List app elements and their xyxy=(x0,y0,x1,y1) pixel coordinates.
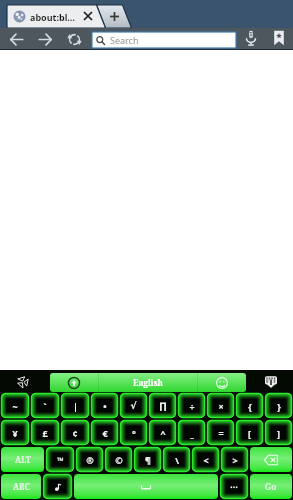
button[interactable]: Voice search xyxy=(241,28,261,48)
staticText: ALT xyxy=(15,454,31,465)
button[interactable]: > xyxy=(220,446,249,473)
button[interactable]: { xyxy=(235,392,264,419)
button[interactable]: English xyxy=(99,373,197,392)
staticText: £ xyxy=(42,427,48,439)
staticText: < xyxy=(203,454,209,466)
button[interactable]: Back xyxy=(6,29,26,49)
button[interactable] xyxy=(74,474,218,499)
staticText: ¥ xyxy=(12,427,18,439)
button[interactable]: ∏ xyxy=(148,392,177,419)
button[interactable]: € xyxy=(90,419,119,446)
button[interactable]: × xyxy=(206,392,235,419)
button[interactable] xyxy=(250,447,292,472)
button[interactable]: Go xyxy=(250,474,292,499)
button[interactable]: ] xyxy=(264,419,293,446)
button[interactable]: • xyxy=(90,392,119,419)
button[interactable]: ¥ xyxy=(0,419,30,446)
button[interactable]: Bookmarks xyxy=(269,28,289,48)
staticText: √ xyxy=(130,401,137,411)
button[interactable]: £ xyxy=(30,419,60,446)
button[interactable]: √ xyxy=(119,392,148,419)
button[interactable]: Settings xyxy=(14,373,32,391)
button[interactable]: } xyxy=(264,392,293,419)
button[interactable]: Reload xyxy=(64,29,84,49)
button[interactable]: ® xyxy=(75,446,104,473)
staticText: × xyxy=(218,400,224,412)
staticText: about:bl… xyxy=(30,11,76,23)
button[interactable]: = xyxy=(206,419,235,446)
button[interactable]: © xyxy=(104,446,133,473)
button[interactable]: Emoji xyxy=(198,373,246,392)
staticText: ¶ xyxy=(145,454,151,466)
staticText: ] xyxy=(277,427,280,439)
staticText: = xyxy=(218,427,224,439)
staticText: ∏ xyxy=(159,401,167,411)
button[interactable]: Language xyxy=(50,373,98,392)
staticText: ™ xyxy=(57,454,64,466)
staticText: € xyxy=(102,427,108,439)
staticText: Go xyxy=(265,481,277,492)
staticText: ~ xyxy=(12,400,18,412)
button[interactable]: ^ xyxy=(148,419,177,446)
staticText: { xyxy=(248,400,252,412)
staticText: [ xyxy=(248,427,251,439)
staticText: ° xyxy=(132,427,136,439)
button[interactable]: ALT xyxy=(1,447,44,472)
button[interactable]: about:bl… xyxy=(7,5,96,28)
button[interactable] xyxy=(219,473,249,500)
button[interactable]: ™ xyxy=(45,446,75,473)
button[interactable]: ÷ xyxy=(177,392,206,419)
button[interactable]: Close tab xyxy=(80,8,96,24)
staticText: © xyxy=(115,454,123,466)
button[interactable]: _ xyxy=(177,419,206,446)
button[interactable]: \ xyxy=(162,446,191,473)
staticText: \ xyxy=(175,454,179,466)
staticText: ÷ xyxy=(189,400,195,412)
staticText: ` xyxy=(43,400,47,412)
button[interactable]: < xyxy=(191,446,220,473)
staticText: ® xyxy=(86,454,94,466)
button[interactable]: New tab xyxy=(106,8,122,24)
button[interactable]: ° xyxy=(119,419,148,446)
button[interactable]: ¢ xyxy=(60,419,90,446)
staticText: } xyxy=(277,400,281,412)
button[interactable]: ` xyxy=(30,392,60,419)
button[interactable]: ~ xyxy=(0,392,30,419)
button[interactable]: | xyxy=(60,392,90,419)
staticText: | xyxy=(73,400,78,412)
staticText: ^ xyxy=(160,427,166,439)
staticText: _ xyxy=(190,427,194,439)
button[interactable]: Search xyxy=(92,32,236,48)
staticText: ABC xyxy=(13,481,30,492)
button[interactable]: ABC xyxy=(1,474,41,499)
button[interactable]: [ xyxy=(235,419,264,446)
staticText: ¢ xyxy=(72,427,78,439)
staticText: Search xyxy=(110,34,139,46)
button[interactable]: Hide keyboard xyxy=(262,373,280,391)
button[interactable]: ¶ xyxy=(133,446,162,473)
button[interactable] xyxy=(42,473,73,500)
staticText: > xyxy=(232,454,238,466)
button[interactable]: Forward xyxy=(35,29,55,49)
staticText: English xyxy=(133,377,163,388)
staticText: • xyxy=(103,400,107,412)
